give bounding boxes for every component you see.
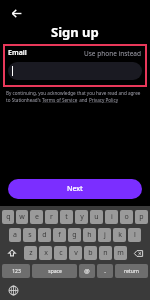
staticText: h [87,230,92,240]
staticText: . [104,267,106,275]
staticText: g [72,230,77,240]
staticText: s [28,230,32,240]
staticText: @ [84,267,90,275]
staticText: and [78,97,89,103]
staticText: u [94,212,99,222]
button[interactable]: Terms of Service [42,97,78,103]
button[interactable]: z [24,246,37,260]
button[interactable]: y [75,210,88,224]
button[interactable]: g [68,228,81,242]
button[interactable]: m [114,246,127,260]
staticText: o [124,212,129,222]
button[interactable]: x [39,246,52,260]
button[interactable]: v [69,246,82,260]
button[interactable]: return [115,264,148,278]
button[interactable]: o [120,210,133,224]
staticText: j [104,230,106,240]
staticText: Next [67,184,83,194]
button[interactable]: . [97,264,113,278]
button[interactable]: Privacy Policy [89,97,118,103]
button[interactable]: u [90,210,103,224]
staticText: t [65,212,68,222]
staticText: f [58,230,61,240]
button[interactable]: Shift [2,246,22,260]
button[interactable]: space [32,264,77,278]
staticText: l [134,230,136,240]
staticText: b [88,248,93,258]
staticText: y [80,212,84,222]
staticText: v [74,248,78,258]
staticText: p [139,212,144,222]
button[interactable]: e [30,210,43,224]
button[interactable]: h [83,228,96,242]
button[interactable]: a [9,228,21,242]
button[interactable]: Back [8,5,24,21]
staticText: w [19,212,25,222]
staticText: Sign up [51,23,99,41]
button[interactable]: Use phone instead [84,49,142,58]
button[interactable] [8,62,142,80]
button[interactable]: d [38,228,51,242]
button[interactable]: Backspace [129,246,148,260]
button[interactable]: s [23,228,36,242]
staticText: a [13,230,17,240]
staticText: x [44,248,48,258]
button[interactable]: @ [79,264,95,278]
staticText: e [35,212,39,222]
staticText: i [111,212,113,222]
button[interactable]: r [45,210,58,224]
staticText: m [117,248,124,258]
staticText: Use phone instead [84,49,142,58]
staticText: Email [8,48,27,58]
button[interactable]: Change language [7,284,19,296]
staticText: return [124,268,139,275]
staticText: q [6,212,11,222]
button[interactable]: j [98,228,111,242]
button[interactable]: t [60,210,73,224]
button[interactable]: f [53,228,66,242]
button[interactable]: b [84,246,97,260]
staticText: d [42,230,47,240]
staticText: c [59,248,63,258]
staticText: z [29,248,33,258]
button[interactable]: 123 [2,264,30,278]
staticText: By continuing, you acknowledge that you … [6,90,141,96]
button[interactable]: p [135,210,148,224]
staticText: space [48,268,62,275]
button[interactable]: w [16,210,28,224]
staticText: 123 [12,268,21,275]
staticText: to Stationhead's [6,97,42,103]
button[interactable]: Next [8,179,142,199]
button[interactable]: c [54,246,67,260]
button[interactable]: k [113,228,126,242]
button[interactable]: n [99,246,112,260]
staticText: k [118,230,122,240]
staticText: r [50,212,53,222]
button[interactable]: l [128,228,141,242]
staticText: n [103,248,108,258]
button[interactable]: q [2,210,14,224]
button[interactable]: i [105,210,118,224]
